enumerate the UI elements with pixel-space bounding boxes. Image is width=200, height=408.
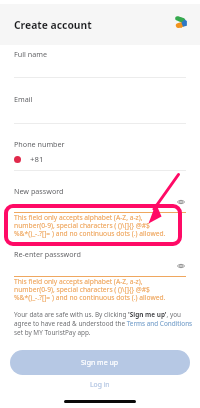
- staticText: Sign me up: [81, 358, 119, 368]
- staticText: Full name: [14, 49, 47, 59]
- staticText: Email: [14, 94, 33, 104]
- button[interactable]: Sign me up: [10, 350, 190, 375]
- staticText: Your data are safe with us. By clicking …: [14, 310, 193, 337]
- staticText: Create account: [14, 18, 92, 32]
- staticText: Re-enter passsword: [14, 249, 81, 259]
- staticText: This field only accepts alphabet (A-Z, a…: [14, 277, 166, 302]
- button[interactable]: Log in: [0, 378, 200, 390]
- button[interactable]: Show password: [174, 259, 187, 272]
- button[interactable]: Show password: [174, 195, 187, 208]
- staticText: New password: [14, 186, 64, 196]
- staticText: Log in: [90, 380, 110, 389]
- staticText: +81: [30, 154, 44, 165]
- button[interactable]: +81: [14, 153, 44, 165]
- staticText: This field only accepts alphabet (A-Z, a…: [14, 213, 166, 238]
- staticText: Phone number: [14, 139, 65, 149]
- button[interactable]: App logo: [171, 12, 191, 32]
